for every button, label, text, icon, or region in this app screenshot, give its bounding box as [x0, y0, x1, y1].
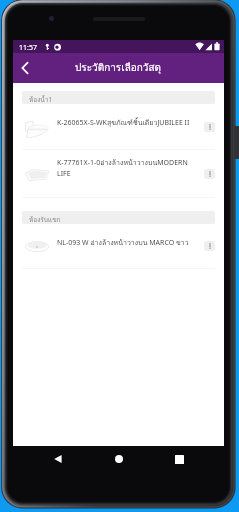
- staticText: ห้องน้ำ1: [29, 95, 53, 104]
- button[interactable]: More options: [204, 169, 215, 179]
- staticText: 11:57: [19, 43, 37, 53]
- staticText: NL-093 W อ่างล้างหน้าวางบน MARCO ขาว: [57, 237, 202, 248]
- button[interactable]: K-26065X-S-WKสุขภัณฑ์ชิ้นเดียวJUBILEE II: [13, 104, 224, 149]
- button[interactable]: Back: [44, 445, 72, 473]
- button[interactable]: Home: [105, 445, 133, 473]
- button[interactable]: Recent apps: [165, 445, 193, 473]
- button[interactable]: K-77761X-1-0อ่างล้างหน้าวางบนMODERN LIFE: [13, 150, 224, 197]
- staticText: ห้องรับแขก: [29, 215, 61, 224]
- button[interactable]: NL-093 W อ่างล้างหน้าวางบน MARCO ขาว: [13, 224, 224, 268]
- button[interactable]: More options: [204, 241, 215, 251]
- button[interactable]: More options: [204, 122, 215, 132]
- staticText: K-77761X-1-0อ่างล้างหน้าวางบนMODERN LIFE: [57, 157, 202, 178]
- staticText: ประวัติการเลือกวัสดุ: [75, 60, 162, 76]
- staticText: K-26065X-S-WKสุขภัณฑ์ชิ้นเดียวJUBILEE II: [57, 117, 202, 128]
- button[interactable]: Back: [13, 53, 37, 83]
